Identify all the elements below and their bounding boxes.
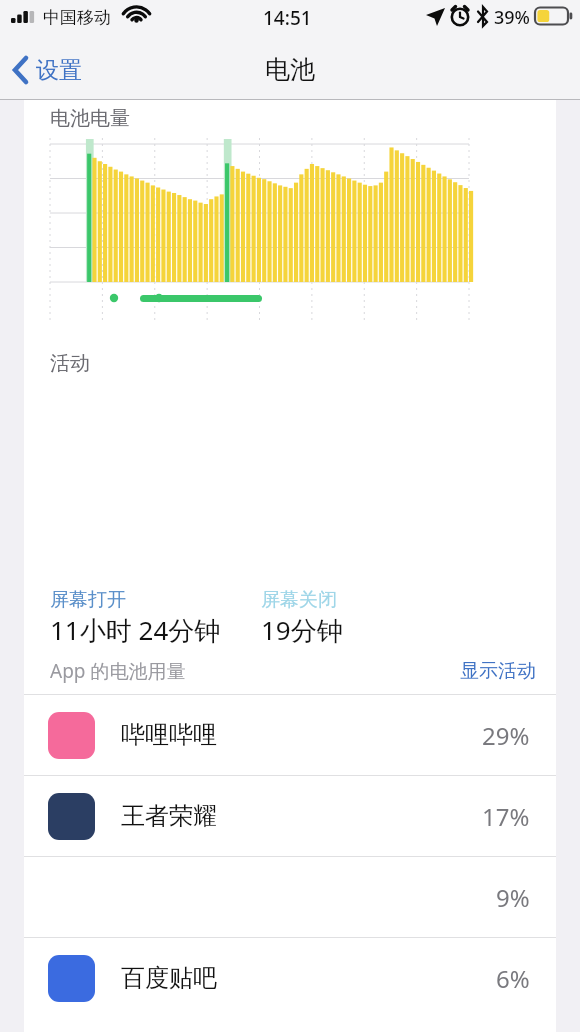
staticText: 电池电量: [50, 106, 130, 131]
staticText: 14:51: [263, 5, 312, 31]
staticText: 中国移动: [43, 7, 111, 28]
staticText: 17%: [482, 800, 530, 833]
staticText: 屏幕打开: [50, 588, 126, 612]
staticText: 电池: [265, 54, 315, 85]
staticText: 6%: [496, 962, 530, 995]
staticText: 活动: [50, 351, 90, 376]
staticText: 屏幕关闭: [261, 588, 337, 612]
staticText: 王者荣耀: [121, 801, 217, 831]
button[interactable]: 百度贴吧: [24, 938, 556, 1018]
staticText: 显示活动: [460, 659, 536, 683]
staticText: 19分钟: [261, 612, 343, 648]
staticText: 百度贴吧: [121, 963, 217, 993]
staticText: 设置: [36, 56, 82, 85]
button[interactable]: 显示活动: [440, 653, 556, 689]
button[interactable]: 哔哩哔哩: [24, 695, 556, 775]
staticText: 11小时 24分钟: [50, 612, 221, 648]
button[interactable]: 9%: [24, 857, 556, 937]
staticText: 哔哩哔哩: [121, 720, 217, 750]
staticText: 29%: [482, 719, 530, 752]
staticText: 39%: [494, 5, 530, 30]
button[interactable]: 设置: [0, 49, 92, 91]
staticText: App 的电池用量: [50, 658, 186, 684]
staticText: 9%: [496, 881, 530, 914]
button[interactable]: 王者荣耀: [24, 776, 556, 856]
